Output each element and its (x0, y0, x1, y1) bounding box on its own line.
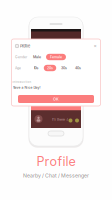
staticText: Gender (15, 55, 27, 59)
staticText: 20s (47, 66, 53, 70)
staticText: Introduction (12, 80, 31, 84)
staticText: Have a Nice Day! (12, 85, 40, 89)
staticText: Hi there :) (52, 117, 68, 122)
staticText: 30s (61, 66, 67, 70)
staticText: ✕ (93, 44, 96, 48)
button[interactable]: 10s (30, 65, 41, 71)
button[interactable]: 30s (58, 65, 69, 71)
button[interactable]: 40s (72, 65, 83, 71)
button[interactable]: Female (46, 54, 66, 60)
button[interactable]: OK (18, 95, 94, 103)
button[interactable]: Male (31, 54, 43, 60)
button[interactable]: Close (91, 42, 99, 50)
staticText: 40s (75, 66, 81, 70)
staticText: Profile (36, 154, 75, 169)
staticText: Profile (20, 44, 30, 48)
staticText: OK (53, 97, 59, 101)
staticText: Male (33, 55, 41, 59)
staticText: Age (15, 66, 21, 70)
staticText: Nearby / Chat / Messenger (23, 172, 89, 179)
staticText: 10s (33, 66, 38, 70)
button[interactable]: 20s (44, 65, 56, 71)
staticText: Female (50, 55, 62, 59)
